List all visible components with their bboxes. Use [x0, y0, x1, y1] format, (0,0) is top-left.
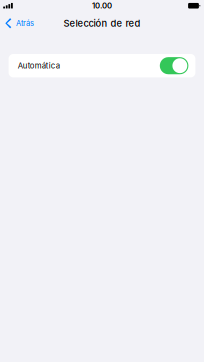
button[interactable]: Atrás [0, 13, 40, 34]
staticText: 10.00 [92, 1, 112, 10]
staticText: Selección de red [63, 18, 140, 29]
button[interactable]: Automática [9, 54, 195, 77]
staticText: Automática [18, 61, 60, 70]
staticText: Atrás [16, 19, 34, 28]
